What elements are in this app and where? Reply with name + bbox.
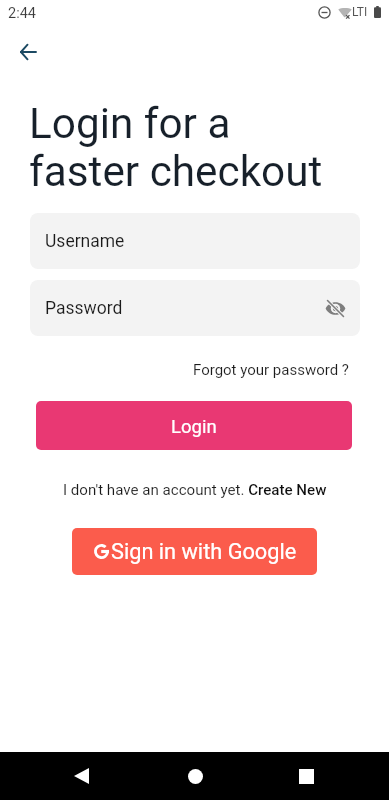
staticText: LTI (352, 5, 368, 19)
staticText: Forgot your password ? (193, 361, 349, 379)
staticText: Username (45, 231, 125, 252)
button[interactable]: Password (30, 280, 360, 336)
staticText: Password (45, 298, 123, 319)
staticText: Login (171, 416, 217, 438)
button[interactable]: Username (30, 213, 360, 269)
staticText: Sign in with Google (111, 539, 297, 564)
button[interactable]: Login (36, 401, 352, 450)
button[interactable]: Back (57, 752, 105, 800)
button[interactable]: I don't have an account yet. Create New (63, 481, 327, 499)
button[interactable]: Sign in with Google (72, 528, 317, 575)
staticText: 2:44 (8, 5, 36, 22)
button[interactable]: Back (6, 30, 50, 74)
button[interactable]: Home (171, 752, 219, 800)
staticText: Login for a faster checkout (29, 99, 323, 196)
button[interactable]: Forgot your password ? (193, 353, 349, 387)
button[interactable]: Show password (321, 294, 349, 322)
button[interactable]: Recent apps (282, 752, 330, 800)
